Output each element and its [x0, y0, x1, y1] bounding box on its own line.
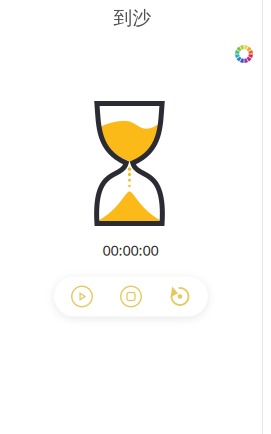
staticText: 到沙 [113, 6, 151, 29]
button[interactable]: Stop [114, 278, 148, 314]
button[interactable]: Reset [163, 278, 197, 314]
button[interactable]: Start [65, 278, 99, 314]
button[interactable]: Theme [229, 39, 259, 69]
staticText: 00:00:00 [102, 240, 158, 260]
